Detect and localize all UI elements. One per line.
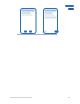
button[interactable]: Logo	[64, 4, 74, 11]
